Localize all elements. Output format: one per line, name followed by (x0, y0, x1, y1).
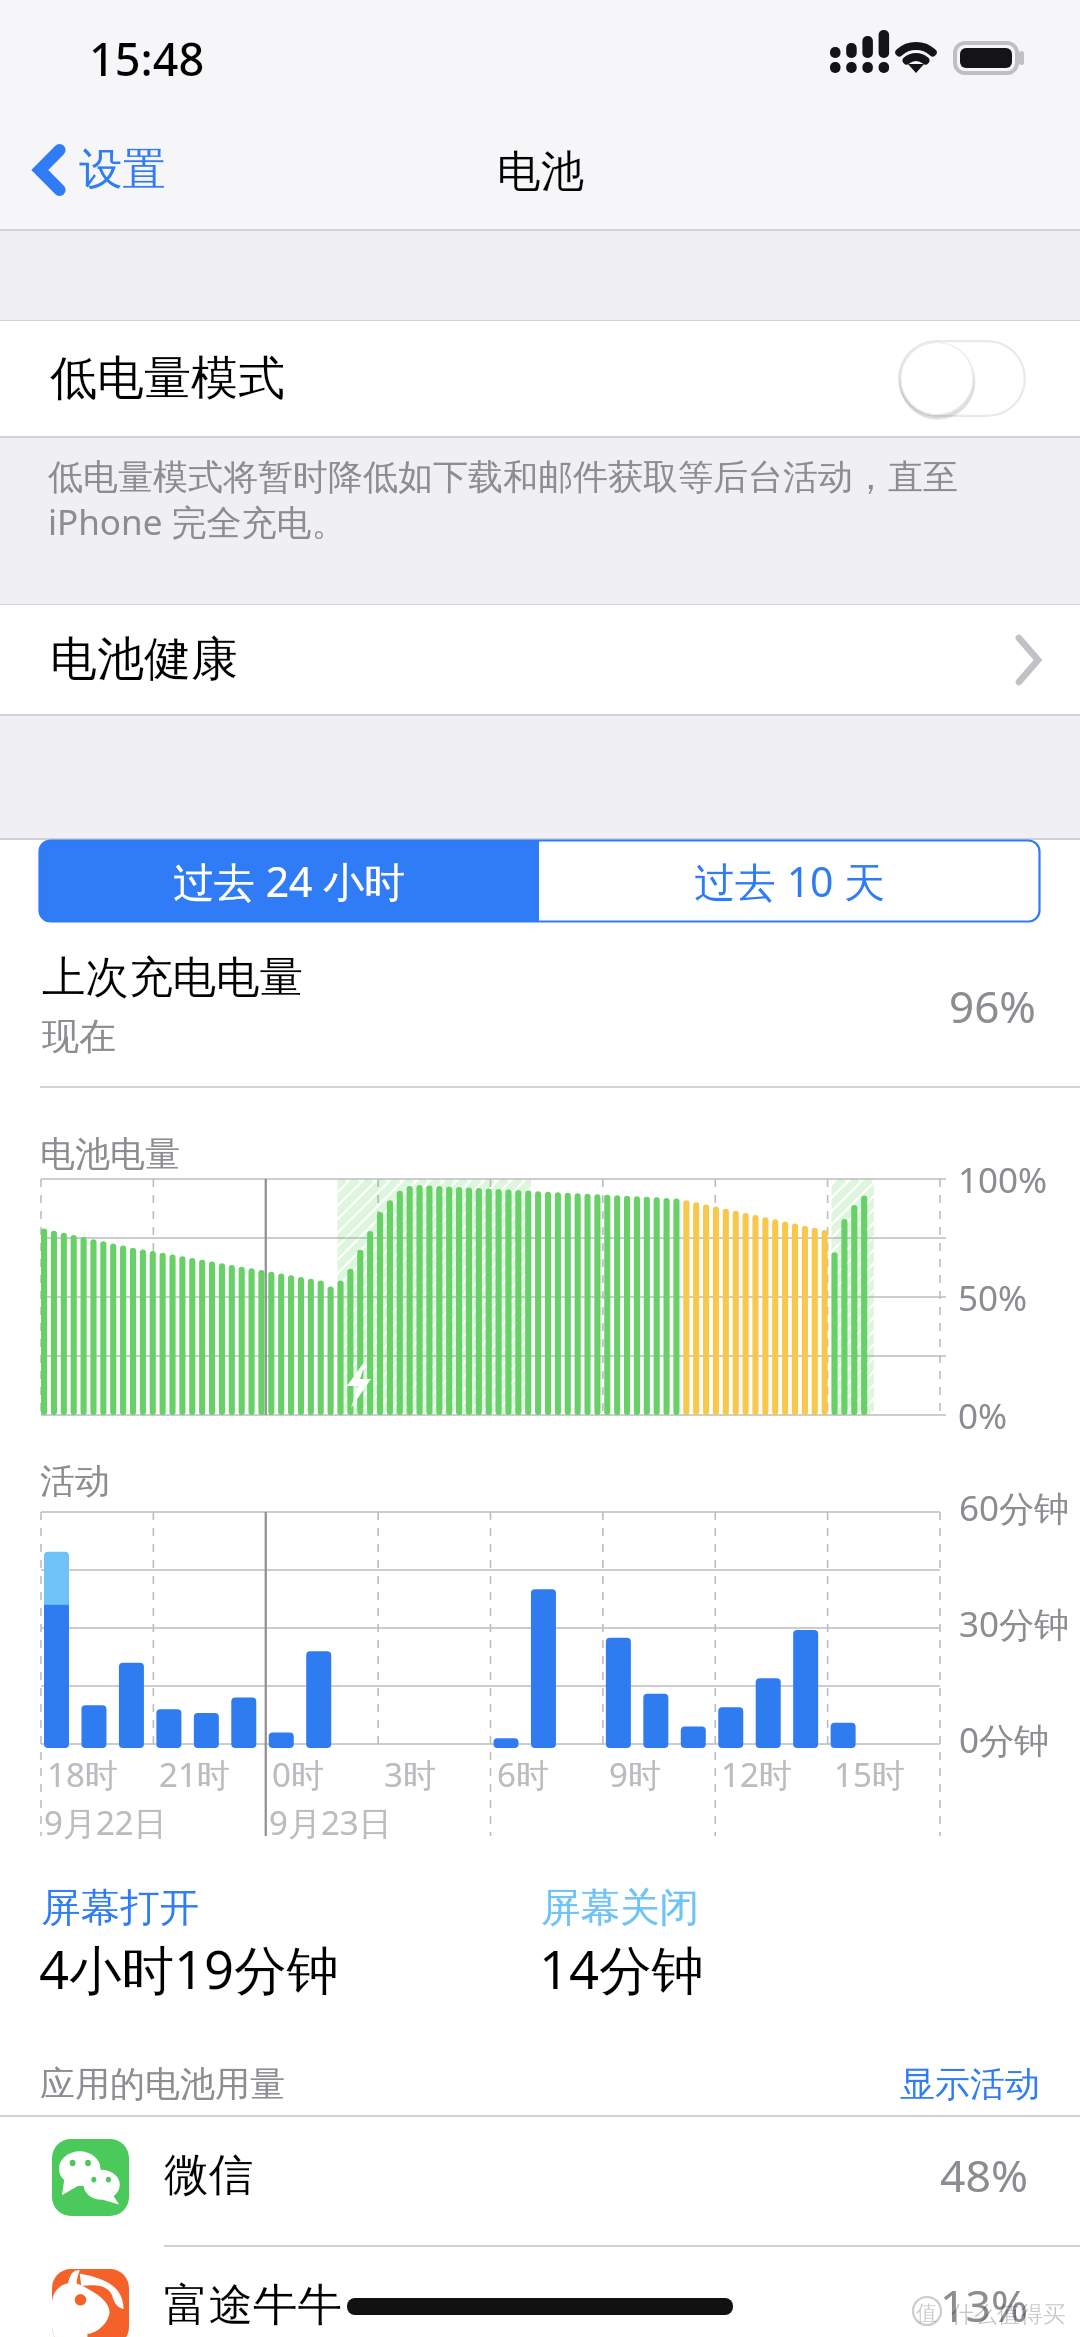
staticText: 什么值得买 (951, 2300, 1066, 2329)
staticText: 9月23日 (269, 1800, 392, 1845)
staticText: 富途牛牛 (164, 2277, 342, 2333)
staticText: 18时 (47, 1752, 118, 1797)
staticText: 96% (949, 976, 1036, 1036)
staticText: 现在 (42, 1013, 116, 1060)
button[interactable]: 电池健康 (0, 605, 1080, 714)
staticText: 48% (940, 2144, 1028, 2205)
staticText: 0分钟 (959, 1716, 1050, 1764)
staticText: 15时 (834, 1752, 905, 1797)
staticText: 100% (958, 1156, 1048, 1204)
staticText: 14分钟 (539, 1933, 705, 2005)
button[interactable]: 过去 24 小时 (39, 840, 539, 922)
button[interactable]: 低电量模式 (0, 321, 1080, 436)
staticText: 值 (916, 2300, 937, 2326)
staticText: 上次充电电量 (42, 950, 303, 1005)
staticText: 应用的电池用量 (40, 2062, 285, 2106)
staticText: 微信 (164, 2147, 253, 2203)
staticText: 50% (958, 1274, 1028, 1322)
staticText: 15:48 (89, 28, 205, 89)
staticText: 13% (940, 2274, 1028, 2335)
button[interactable]: 富途牛牛 (0, 2246, 1080, 2337)
staticText: 3时 (384, 1752, 436, 1797)
button[interactable]: 显示活动 (900, 2062, 1080, 2106)
staticText: 12时 (721, 1752, 792, 1797)
staticText: 过去 10 天 (694, 853, 886, 909)
staticText: 0时 (272, 1752, 324, 1797)
staticText: 4小时19分钟 (39, 1933, 340, 2005)
staticText: 9月22日 (44, 1800, 167, 1845)
staticText: 6时 (497, 1752, 549, 1797)
staticText: 设置 (79, 142, 166, 197)
staticText: 低电量模式 (50, 349, 285, 408)
button[interactable]: 过去 10 天 (539, 840, 1040, 922)
staticText: 电池电量 (40, 1132, 180, 1176)
staticText: 21时 (159, 1752, 230, 1797)
button[interactable]: 设置 (26, 132, 174, 207)
staticText: 电池 (497, 144, 584, 199)
staticText: 显示活动 (900, 2062, 1040, 2106)
staticText: 9时 (609, 1752, 661, 1797)
button[interactable]: 微信 (0, 2116, 1080, 2246)
staticText: 0% (958, 1392, 1008, 1440)
staticText: 60分钟 (959, 1484, 1070, 1532)
staticText: 低电量模式将暂时降低如下载和邮件获取等后台活动，直至 iPhone 完全充电。 (48, 455, 958, 546)
staticText: 屏幕关闭 (541, 1883, 699, 1933)
staticText: 过去 24 小时 (173, 853, 406, 909)
staticText: 电池健康 (50, 630, 238, 689)
staticText: 30分钟 (959, 1600, 1070, 1648)
staticText: 活动 (40, 1459, 110, 1503)
staticText: 屏幕打开 (41, 1883, 199, 1933)
